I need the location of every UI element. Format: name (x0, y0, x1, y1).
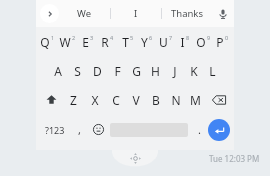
button[interactable]: , (70, 114, 88, 145)
staticText: I (180, 34, 185, 50)
staticText: 7 (169, 34, 173, 41)
staticText: 3 (90, 34, 94, 41)
staticText: G (132, 63, 141, 79)
button[interactable]: F (108, 56, 127, 85)
staticText: U (159, 34, 168, 50)
staticText: ?123 (45, 124, 65, 136)
staticText: X (91, 92, 99, 108)
staticText: We (77, 7, 92, 20)
staticText: K (190, 63, 198, 79)
button[interactable]: Voice input (212, 0, 234, 27)
staticText: T (122, 34, 129, 50)
staticText: 6 (149, 34, 153, 41)
staticText: Tue 12:03 PM (209, 153, 260, 164)
staticText: L (209, 63, 216, 79)
staticText: H (151, 63, 160, 79)
staticText: R (101, 34, 109, 50)
button[interactable]: I (111, 0, 161, 27)
button[interactable]: X (85, 85, 104, 114)
staticText: 2 (72, 34, 76, 41)
staticText: W (59, 34, 71, 50)
button[interactable]: A (48, 56, 67, 85)
button[interactable]: M (186, 85, 205, 114)
staticText: 4 (110, 34, 114, 41)
button[interactable]: ?123 (40, 114, 70, 145)
staticText: 5 (130, 34, 134, 41)
button[interactable]: Shift (38, 85, 64, 114)
button[interactable]: Z (64, 85, 83, 114)
button[interactable]: Backspace (206, 85, 232, 114)
button[interactable]: U (156, 27, 175, 56)
button[interactable]: Emoji (88, 114, 108, 145)
staticText: 9 (207, 34, 211, 41)
staticText: A (54, 63, 62, 79)
button[interactable]: S (68, 56, 87, 85)
button[interactable]: . (190, 114, 208, 145)
staticText: 1 (51, 34, 55, 41)
staticText: V (132, 92, 140, 108)
button[interactable]: Y (137, 27, 156, 56)
staticText: J (173, 63, 177, 79)
staticText: I (134, 7, 138, 20)
staticText: E (82, 34, 89, 50)
button[interactable]: R (98, 27, 117, 56)
button[interactable]: I (175, 27, 194, 56)
button[interactable]: We (59, 0, 110, 27)
button[interactable]: Enter (208, 119, 230, 141)
staticText: P (216, 34, 224, 50)
staticText: , (78, 122, 81, 137)
staticText: D (93, 63, 102, 79)
button[interactable]: L (203, 56, 222, 85)
button[interactable]: Thanks (162, 0, 212, 27)
button[interactable]: D (88, 56, 107, 85)
button[interactable]: G (127, 56, 146, 85)
staticText: Z (70, 92, 77, 108)
button[interactable]: Move cursor (112, 150, 158, 172)
staticText: S (74, 63, 81, 79)
button[interactable]: T (118, 27, 137, 56)
button[interactable]: N (166, 85, 185, 114)
staticText: 8 (186, 34, 190, 41)
button[interactable]: H (146, 56, 165, 85)
button[interactable]: V (126, 85, 145, 114)
button[interactable]: Expand toolbar (40, 4, 59, 23)
button[interactable]: E (78, 27, 97, 56)
staticText: Thanks (171, 7, 203, 20)
button[interactable]: Q (38, 27, 57, 56)
staticText: N (171, 92, 181, 108)
staticText: M (190, 92, 201, 108)
staticText: O (196, 34, 206, 50)
staticText: . (198, 122, 201, 137)
staticText: F (114, 63, 121, 79)
button[interactable]: J (165, 56, 184, 85)
button[interactable]: K (184, 56, 203, 85)
staticText: Y (141, 34, 148, 50)
button[interactable]: O (194, 27, 213, 56)
button[interactable]: B (146, 85, 165, 114)
staticText: C (112, 92, 120, 108)
button[interactable]: W (58, 27, 77, 56)
staticText: B (152, 92, 160, 108)
staticText: 0 (225, 34, 229, 41)
button[interactable]: P (213, 27, 232, 56)
staticText: Q (40, 34, 50, 50)
button[interactable]: C (106, 85, 125, 114)
